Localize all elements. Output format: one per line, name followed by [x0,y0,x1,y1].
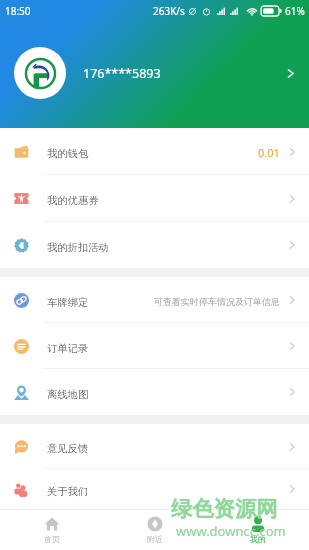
button[interactable]: 我的优惠券 [0,175,309,222]
button[interactable]: 我的折扣活动 [0,222,309,268]
staticText: 关于我们 [47,485,89,498]
button[interactable]: 离线地图 [0,369,309,415]
staticText: 首页 [44,534,60,544]
staticText: 176****5893 [83,65,161,82]
staticText: 61% [285,4,305,18]
button[interactable]: 我的钱包 [0,128,309,175]
staticText: 我的钱包 [47,147,89,160]
staticText: 离线地图 [47,388,89,401]
button[interactable]: 我的 [206,510,309,550]
button[interactable]: 首页 [0,510,103,550]
staticText: 18:50 [5,4,31,18]
staticText: 订单记录 [47,342,89,355]
staticText: 我的折扣活动 [47,241,109,254]
staticText: 我的优惠券 [47,194,99,207]
staticText: 意见反馈 [47,442,89,455]
button[interactable]: 关于我们 [0,469,309,509]
staticText: 我的 [250,534,266,544]
button[interactable]: 订单记录 [0,323,309,369]
staticText: www.downcc.com [176,522,286,540]
staticText: 绿色资源网 [171,495,278,522]
staticText: 可查看实时停车情况及订单信息 [154,296,280,307]
button[interactable]: 176****5893 [0,25,309,121]
staticText: 0.01 [258,145,280,160]
staticText: 车牌绑定 [47,296,89,309]
button[interactable]: 意见反馈 [0,424,309,469]
button[interactable]: 车牌绑定 [0,277,309,323]
button[interactable]: 附近 [103,510,206,550]
staticText: 附近 [147,534,163,544]
staticText: 263K/s [153,4,185,18]
